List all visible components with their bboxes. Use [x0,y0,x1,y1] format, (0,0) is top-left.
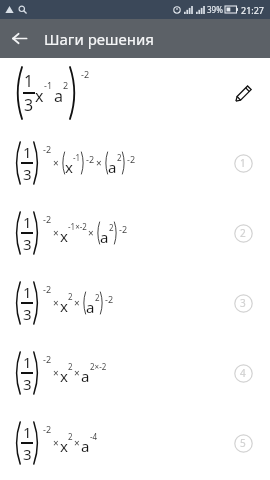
staticText: 2 [68,431,73,442]
staticText: 2×-2 [90,361,107,372]
staticText: -2 [81,68,90,80]
staticText: 1 [23,282,32,302]
staticText: × [88,226,94,240]
staticText: × [74,436,80,450]
staticText: -1×-2 [68,221,87,232]
staticText: a [108,157,117,174]
staticText: -4 [90,431,98,442]
staticText: -2 [43,423,52,435]
staticText: × [53,436,59,450]
button[interactable]: 1 [0,128,270,198]
staticText: -1 [44,79,53,91]
staticText: 4 [240,366,246,380]
staticText: -2 [43,213,52,225]
staticText: a [81,436,90,456]
staticText: 3 [240,296,246,310]
staticText: 1 [23,212,32,232]
staticText: x [60,296,68,316]
staticText: 39% [207,4,223,15]
staticText: 1 [23,422,32,442]
staticText: -2 [43,143,52,155]
staticText: 2 [95,292,100,303]
staticText: -2 [127,153,136,165]
staticText: 3 [23,304,32,324]
staticText: 1 [23,142,32,162]
staticText: -2 [105,293,114,305]
staticText: 1 [240,156,246,170]
button[interactable]: 1 [0,268,270,338]
staticText: -2 [43,283,52,295]
button[interactable]: 1 [0,58,270,128]
staticText: 2 [68,291,73,302]
staticText: 2 [63,79,69,91]
staticText: 3 [24,94,34,116]
button[interactable]: 1 [0,198,270,268]
staticText: Шаги решения [44,29,154,49]
button[interactable]: Edit [226,76,260,110]
staticText: × [74,296,80,310]
staticText: 1 [23,352,32,372]
staticText: 2 [109,222,114,233]
staticText: x [35,85,44,107]
staticText: x [60,226,68,246]
staticText: a [100,227,109,244]
staticText: a [86,297,95,314]
staticText: 3 [23,374,32,394]
staticText: 1 [24,70,34,92]
staticText: × [53,296,59,310]
button[interactable]: Back [0,19,39,58]
staticText: 21:27 [241,4,265,16]
staticText: 3 [23,444,32,464]
staticText: -2 [119,223,128,235]
staticText: -2 [43,353,52,365]
staticText: × [74,366,80,380]
button[interactable]: Step 2 [226,216,260,250]
staticText: 2 [68,361,73,372]
staticText: 5 [240,436,246,450]
staticText: x [65,157,73,174]
staticText: × [53,226,59,240]
staticText: 2 [240,226,246,240]
staticText: -1 [73,152,81,163]
staticText: × [53,156,59,170]
staticText: -2 [86,153,95,165]
staticText: x [60,436,68,456]
staticText: a [81,366,90,386]
staticText: 3 [23,164,32,184]
staticText: × [53,366,59,380]
button[interactable]: 1 [0,338,270,408]
button[interactable]: Step 1 [226,146,260,180]
button[interactable]: Step 4 [226,356,260,390]
staticText: x [60,366,68,386]
button[interactable]: 1 [0,408,270,478]
staticText: a [54,85,63,107]
staticText: × [96,156,102,170]
button[interactable]: Step 3 [226,286,260,320]
staticText: 2 [117,152,122,163]
button[interactable]: Step 5 [226,426,260,460]
staticText: 3 [23,234,32,254]
